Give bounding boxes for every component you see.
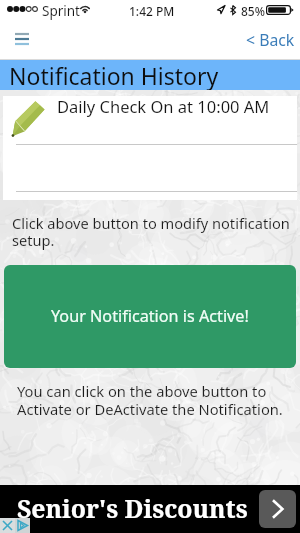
- button[interactable]: < Back: [246, 29, 295, 51]
- button[interactable]: Ad choices: [15, 518, 30, 533]
- staticText: Sprint: [42, 2, 80, 20]
- button[interactable]: Daily Check On at 10:00 AM: [3, 96, 297, 144]
- button[interactable]: Next ad: [259, 490, 296, 528]
- staticText: Daily Check On at 10:00 AM: [57, 95, 270, 117]
- staticText: Your Notification is Active!: [51, 305, 249, 327]
- staticText: < Back: [246, 29, 295, 51]
- staticText: Click above button to modify notificatio…: [12, 213, 294, 250]
- button[interactable]: Menu: [7, 25, 37, 55]
- staticText: 85%: [241, 3, 265, 19]
- staticText: Notification History: [9, 60, 219, 90]
- staticText: 1:42 PM: [129, 3, 175, 19]
- button[interactable]: Your Notification is Active!: [4, 265, 296, 368]
- staticText: Senior's Discounts: [17, 491, 248, 525]
- staticText: You can click on the above button to Act…: [17, 381, 296, 419]
- button[interactable]: Close ad: [0, 518, 15, 533]
